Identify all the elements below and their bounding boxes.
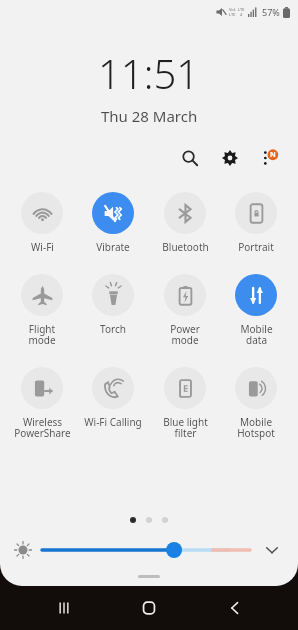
button[interactable]: Wi-Fi [7, 192, 77, 254]
staticText: LTE [238, 7, 245, 12]
staticText: VoL [229, 7, 236, 12]
staticText: 11:51 [98, 46, 200, 100]
staticText: Bluetooth [162, 240, 209, 254]
button[interactable]: Power mode [150, 274, 220, 347]
button[interactable]: Search [176, 144, 204, 172]
staticText: Thu 28 March [101, 106, 198, 126]
button[interactable]: Expand brightness settings [260, 538, 284, 562]
staticText: Flight mode [28, 322, 56, 347]
button[interactable]: Portrait [221, 192, 291, 254]
button[interactable]: Recents [42, 586, 86, 630]
staticText: Wireless PowerShare [14, 415, 71, 440]
staticText: Portrait [238, 240, 274, 254]
button[interactable]: Wireless PowerShare [7, 367, 77, 440]
button[interactable]: Mobile data [221, 274, 291, 347]
button[interactable]: Vibrate [78, 192, 148, 254]
button[interactable]: Mobile Hotspot [221, 367, 291, 440]
button[interactable]: Brightness [42, 537, 250, 563]
button[interactable]: Flight mode [7, 274, 77, 347]
staticText: Wi-Fi Calling [84, 415, 142, 429]
button[interactable]: Bluetooth [150, 192, 220, 254]
button[interactable]: Torch [78, 274, 148, 336]
staticText: 4 [240, 12, 243, 17]
staticText: Mobile data [240, 322, 273, 347]
button[interactable]: Wi-Fi Calling [78, 367, 148, 429]
button[interactable]: More options [256, 144, 284, 172]
staticText: 57% [262, 6, 280, 18]
staticText: Power mode [170, 322, 200, 347]
staticText: LTE [229, 12, 236, 17]
button[interactable]: Back [213, 586, 257, 630]
staticText: N [270, 150, 276, 160]
button[interactable]: Home [127, 586, 171, 630]
staticText: Vibrate [96, 240, 130, 254]
staticText: Mobile Hotspot [237, 415, 275, 440]
staticText: Torch [100, 322, 126, 336]
staticText: Wi-Fi [31, 240, 54, 254]
button[interactable]: Blue light filter [150, 367, 220, 440]
staticText: Blue light filter [163, 415, 208, 440]
button[interactable]: Settings [216, 144, 244, 172]
